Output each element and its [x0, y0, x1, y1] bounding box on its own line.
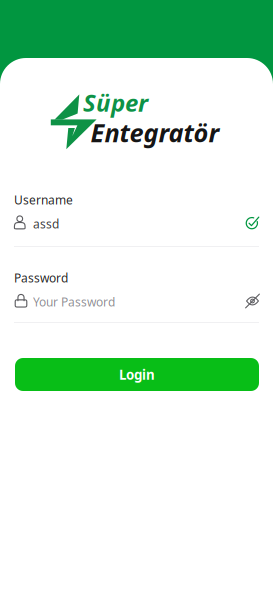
staticText: Login: [119, 366, 155, 383]
button[interactable]: Login: [15, 358, 259, 391]
button[interactable]: Username valid: [244, 214, 261, 231]
button[interactable]: Show password: [242, 291, 262, 311]
staticText: assd: [33, 216, 59, 232]
staticText: Your Password: [33, 294, 115, 310]
staticText: Süper: [83, 86, 148, 118]
staticText: Entegratör: [90, 115, 219, 149]
staticText: Password: [14, 270, 68, 286]
staticText: Username: [14, 192, 73, 208]
